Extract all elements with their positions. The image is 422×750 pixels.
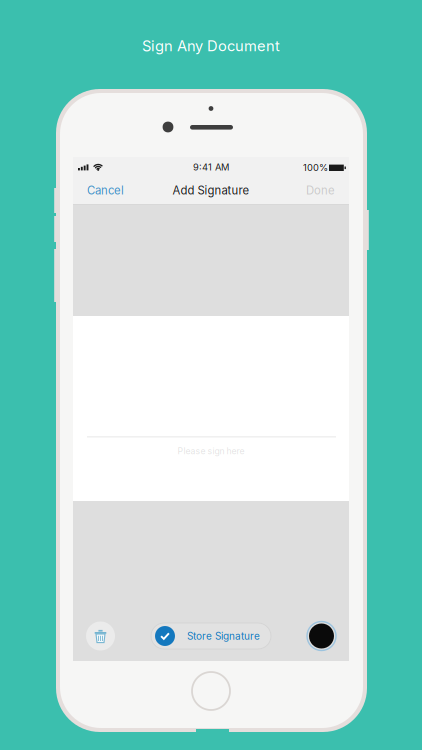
staticText: Add Signature (172, 184, 249, 197)
staticText: Sign Any Document (142, 37, 280, 55)
button[interactable]: Clear signature (86, 621, 115, 650)
button[interactable]: Ink colour black (307, 621, 336, 650)
button[interactable]: Store Signature (151, 623, 271, 649)
staticText: 9:41 AM (193, 161, 229, 173)
staticText: Store Signature (187, 630, 260, 642)
staticText: Done (306, 184, 335, 197)
staticText: Cancel (87, 184, 124, 197)
button[interactable]: Done (302, 178, 339, 203)
button[interactable]: Cancel (83, 178, 128, 203)
staticText: Please sign here (177, 446, 244, 456)
staticText: 100% (303, 162, 328, 173)
